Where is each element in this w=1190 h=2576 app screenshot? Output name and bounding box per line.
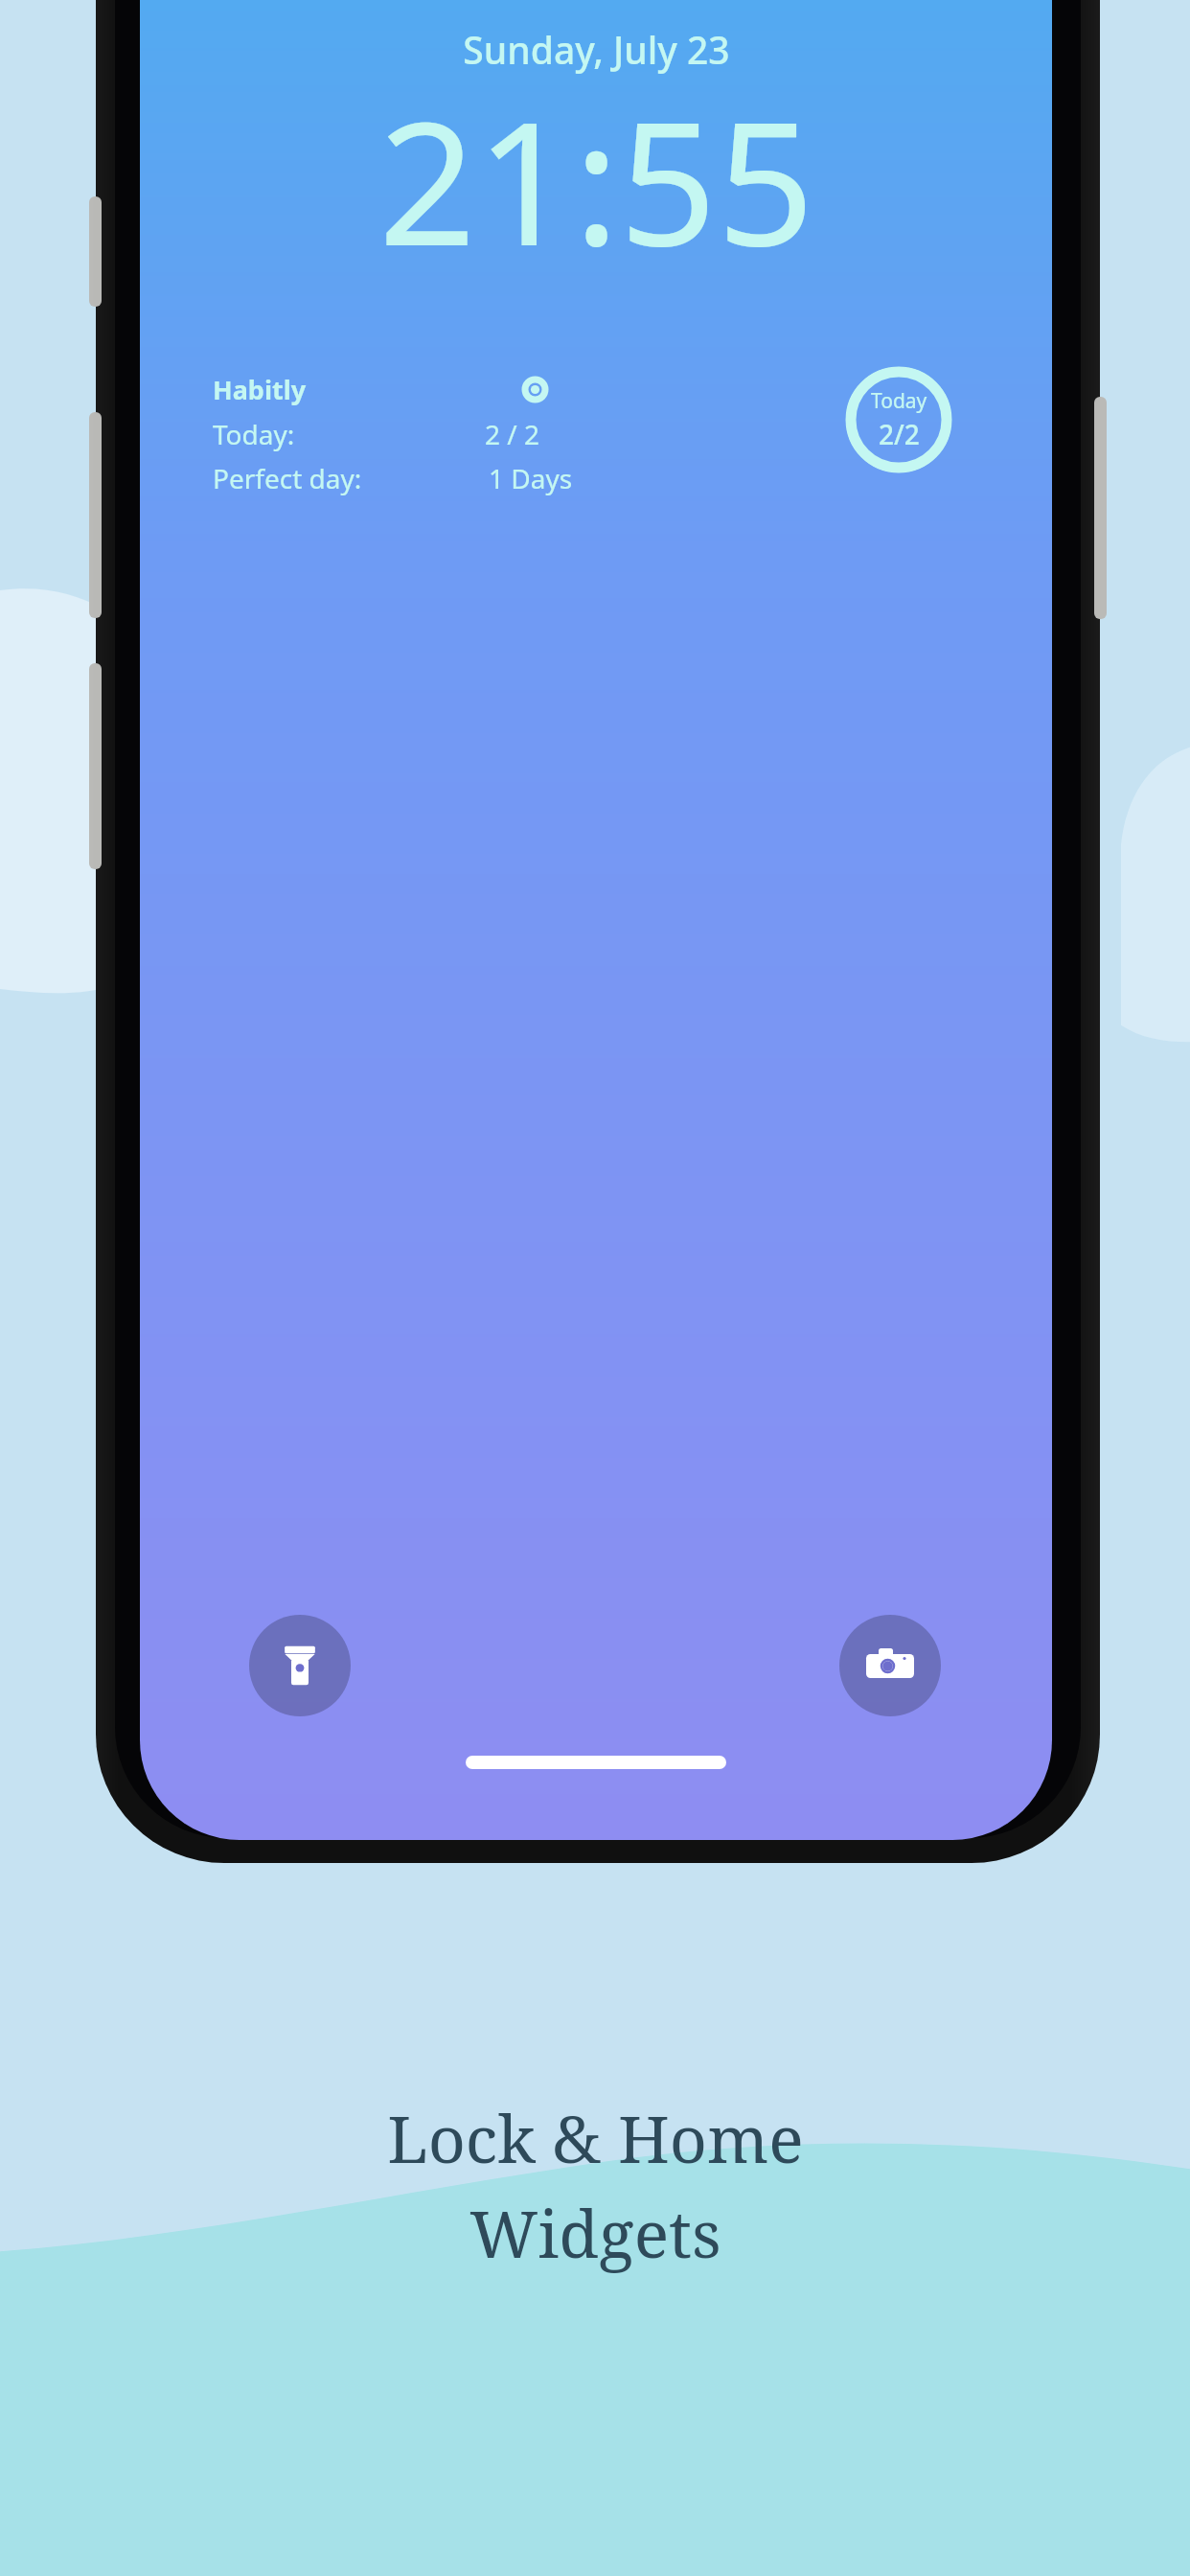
button[interactable]: Today: [845, 366, 952, 473]
staticText: Today:: [213, 416, 295, 452]
staticText: 21:55: [378, 63, 814, 295]
staticText: Sunday, July 23: [463, 24, 730, 75]
staticText: 1 Days: [489, 460, 573, 496]
staticText: 2/2: [879, 416, 920, 452]
button[interactable]: Flashlight: [249, 1615, 351, 1716]
button[interactable]: Habitly: [213, 372, 573, 496]
button[interactable]: Camera: [839, 1615, 941, 1716]
staticText: 2 / 2: [485, 416, 540, 452]
staticText: Lock & Home: [387, 2093, 804, 2182]
staticText: Widgets: [469, 2188, 721, 2277]
staticText: Perfect day:: [213, 460, 362, 496]
staticText: Habitly: [213, 372, 307, 407]
staticText: Today: [871, 387, 927, 415]
